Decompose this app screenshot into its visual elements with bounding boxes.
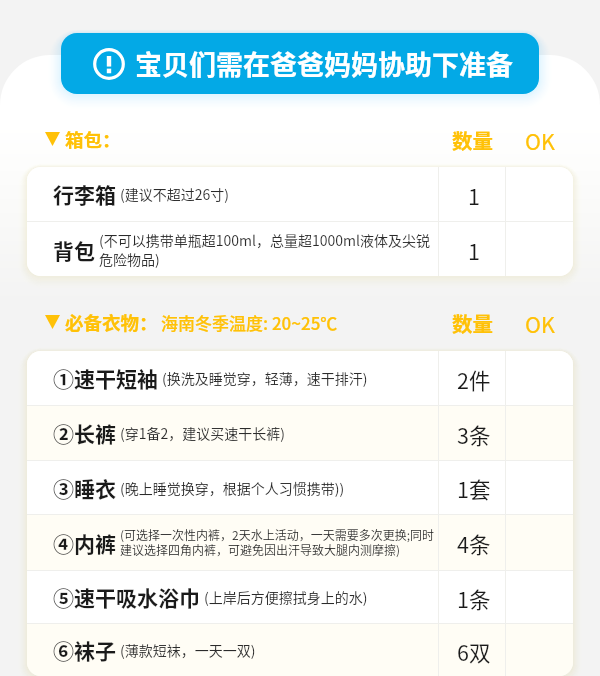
button[interactable]: 宝贝们需在爸爸妈妈协助下准备	[61, 33, 539, 94]
staticText: (薄款短袜，一天一双)	[120, 640, 256, 660]
staticText: 3条	[457, 419, 491, 450]
staticText: (换洗及睡觉穿，轻薄，速干排汗)	[162, 368, 368, 388]
staticText: (建议不超过26寸)	[120, 184, 230, 204]
staticText: OK	[525, 125, 555, 153]
staticText: (晚上睡觉换穿，根据个人习惯携带))	[120, 478, 345, 498]
staticText: 宝贝们需在爸爸妈妈协助下准备	[135, 44, 513, 83]
staticText: (可选择一次性内裤，2天水上活动，一天需要多次更换;同时建议选择四角内裤，可避免…	[120, 526, 436, 559]
staticText: 2件	[457, 364, 491, 395]
staticText: (穿1备2，建议买速干长裤)	[120, 423, 286, 443]
staticText: 必备衣物：	[65, 309, 158, 336]
button[interactable]: ①速干短袖	[27, 351, 573, 405]
staticText: 数量	[452, 125, 493, 153]
staticText: (上岸后方便擦拭身上的水)	[204, 587, 368, 607]
button[interactable]: 背包	[27, 222, 573, 276]
staticText: ③睡衣	[53, 473, 116, 503]
staticText: 行李箱	[53, 179, 116, 209]
staticText: ⑤速干吸水浴巾	[53, 582, 200, 612]
staticText: OK	[525, 308, 555, 336]
staticText: (不可以携带单瓶超100ml，总量超1000ml液体及尖锐危险物品)	[99, 230, 436, 269]
staticText: 1	[468, 180, 480, 211]
button[interactable]: ②长裤	[27, 406, 573, 460]
staticText: 4条	[457, 528, 491, 559]
button[interactable]: ④内裤	[27, 515, 573, 570]
button[interactable]: ⑤速干吸水浴巾	[27, 571, 573, 623]
staticText: 1套	[457, 473, 491, 504]
staticText: 6双	[457, 636, 491, 667]
button[interactable]: 行李箱	[27, 167, 573, 221]
staticText: 箱包：	[65, 126, 121, 153]
button[interactable]: ③睡衣	[27, 461, 573, 514]
staticText: 1	[468, 235, 480, 266]
staticText: 1条	[457, 583, 491, 614]
staticText: 数量	[452, 308, 493, 336]
button[interactable]: ⑥袜子	[27, 624, 573, 676]
staticText: ②长裤	[53, 418, 116, 448]
staticText: 海南冬季温度: 20~25℃	[161, 310, 338, 335]
staticText: ①速干短袖	[53, 363, 158, 393]
staticText: 背包	[53, 235, 95, 265]
staticText: ⑥袜子	[53, 635, 116, 665]
staticText: ④内裤	[53, 528, 116, 558]
